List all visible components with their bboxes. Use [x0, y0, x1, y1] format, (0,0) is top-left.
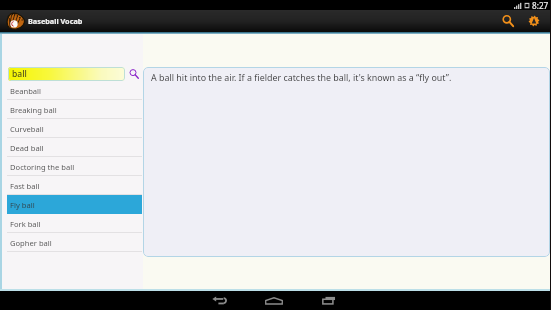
- button[interactable]: Curveball: [7, 119, 142, 138]
- staticText: Beanball: [10, 86, 42, 96]
- staticText: 8:27: [532, 0, 549, 10]
- button[interactable]: Back: [200, 291, 240, 310]
- staticText: Fly ball: [10, 200, 35, 210]
- staticText: Baseball Vocab: [28, 16, 83, 26]
- staticText: Doctoring the ball: [10, 162, 75, 172]
- staticText: Gopher ball: [10, 238, 52, 248]
- button[interactable]: Search vocabulary: [127, 67, 141, 81]
- button[interactable]: ball: [8, 67, 125, 81]
- staticText: Fork ball: [10, 219, 41, 229]
- staticText: Dead ball: [10, 143, 44, 153]
- staticText: Fast ball: [10, 181, 40, 191]
- staticText: A ball hit into the air. If a fielder ca…: [151, 71, 452, 83]
- button[interactable]: Gopher ball: [7, 233, 142, 252]
- button[interactable]: Search: [493, 10, 522, 32]
- button[interactable]: Doctoring the ball: [7, 157, 142, 176]
- button[interactable]: Fast ball: [7, 176, 142, 195]
- staticText: Curveball: [10, 124, 44, 134]
- staticText: ball: [12, 68, 27, 80]
- button[interactable]: Fork ball: [7, 214, 142, 233]
- button[interactable]: Recent apps: [309, 291, 349, 310]
- button[interactable]: Fly ball: [7, 195, 142, 214]
- button[interactable]: Home: [254, 291, 294, 310]
- button[interactable]: Breaking ball: [7, 100, 142, 119]
- button[interactable]: Beanball: [7, 81, 142, 100]
- button[interactable]: Dead ball: [7, 138, 142, 157]
- staticText: Breaking ball: [10, 105, 57, 115]
- button[interactable]: Settings: [522, 10, 546, 32]
